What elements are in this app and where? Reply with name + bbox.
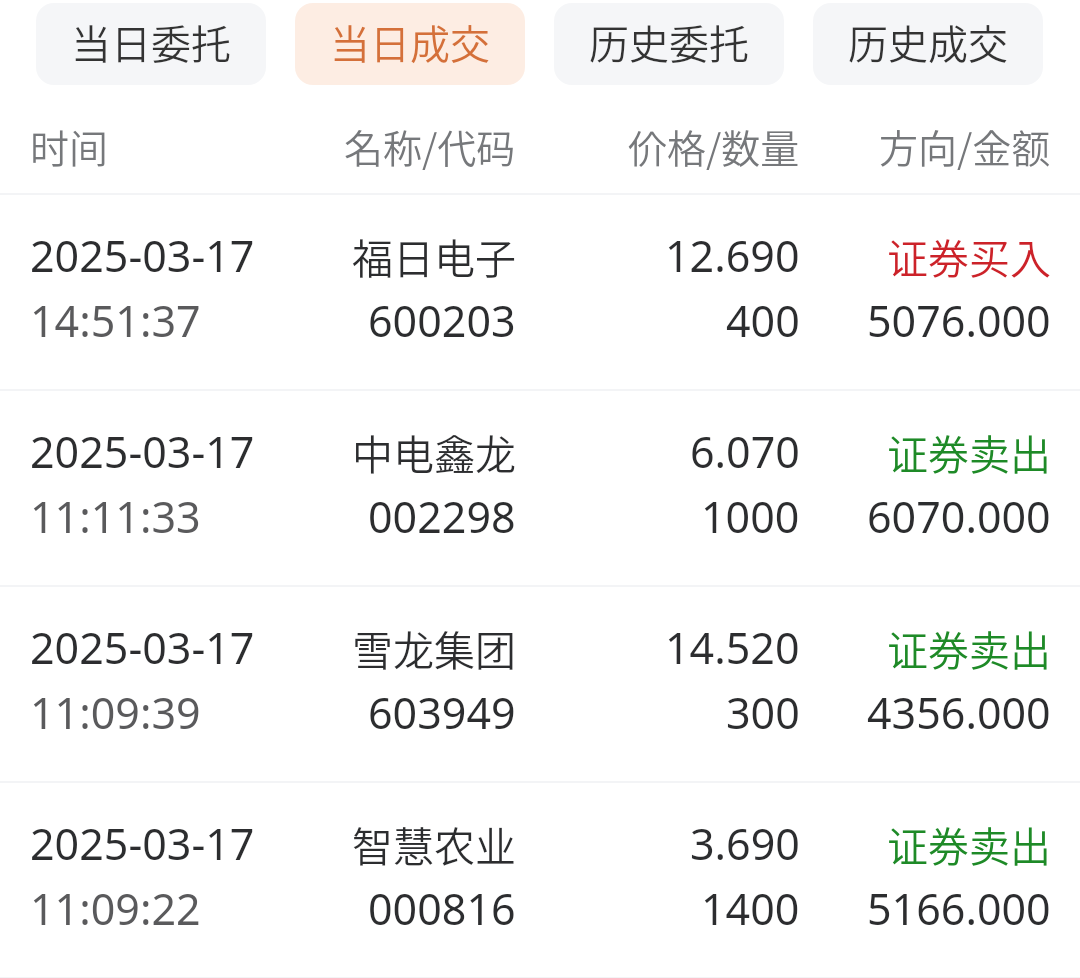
staticText: 600203 (368, 291, 516, 350)
staticText: 2025-03-17 (30, 422, 255, 481)
button[interactable]: 当日委托 (36, 3, 266, 85)
staticText: 证券卖出 (887, 422, 1051, 481)
staticText: 000816 (368, 879, 516, 938)
button[interactable]: 2025-03-17 (0, 391, 1080, 585)
staticText: 11:11:33 (30, 487, 201, 546)
staticText: 中电鑫龙 (352, 422, 516, 481)
staticText: 11:09:39 (30, 683, 201, 742)
staticText: 12.690 (665, 226, 800, 285)
staticText: 2025-03-17 (30, 618, 255, 677)
staticText: 002298 (368, 487, 516, 546)
button[interactable]: 当日成交 (295, 3, 525, 85)
staticText: 2025-03-17 (30, 226, 255, 285)
staticText: 福日电子 (352, 226, 516, 285)
staticText: 2025-03-17 (30, 814, 255, 873)
staticText: 300 (726, 683, 800, 742)
staticText: 14.520 (665, 618, 800, 677)
staticText: 4356.000 (867, 683, 1051, 742)
staticText: 名称/代码 (344, 118, 516, 174)
button[interactable]: 2025-03-17 (0, 783, 1080, 977)
staticText: 1000 (701, 487, 800, 546)
staticText: 方向/金额 (879, 118, 1051, 174)
staticText: 5166.000 (867, 879, 1051, 938)
staticText: 1400 (701, 879, 800, 938)
staticText: 智慧农业 (352, 814, 516, 873)
staticText: 当日成交 (330, 13, 490, 71)
staticText: 证券卖出 (887, 618, 1051, 677)
staticText: 400 (726, 291, 800, 350)
staticText: 历史成交 (848, 13, 1008, 71)
staticText: 时间 (30, 118, 109, 174)
staticText: 603949 (368, 683, 516, 742)
staticText: 6.070 (690, 422, 800, 481)
staticText: 证券买入 (887, 226, 1051, 285)
staticText: 11:09:22 (30, 879, 201, 938)
button[interactable]: 2025-03-17 (0, 587, 1080, 781)
staticText: 14:51:37 (30, 291, 201, 350)
staticText: 6070.000 (867, 487, 1051, 546)
staticText: 价格/数量 (628, 118, 800, 174)
staticText: 雪龙集团 (352, 618, 516, 677)
staticText: 5076.000 (867, 291, 1051, 350)
staticText: 证券卖出 (887, 814, 1051, 873)
staticText: 历史委托 (589, 13, 749, 71)
button[interactable]: 历史成交 (813, 3, 1043, 85)
staticText: 当日委托 (71, 13, 231, 71)
button[interactable]: 历史委托 (554, 3, 784, 85)
staticText: 3.690 (690, 814, 800, 873)
button[interactable]: 2025-03-17 (0, 195, 1080, 389)
